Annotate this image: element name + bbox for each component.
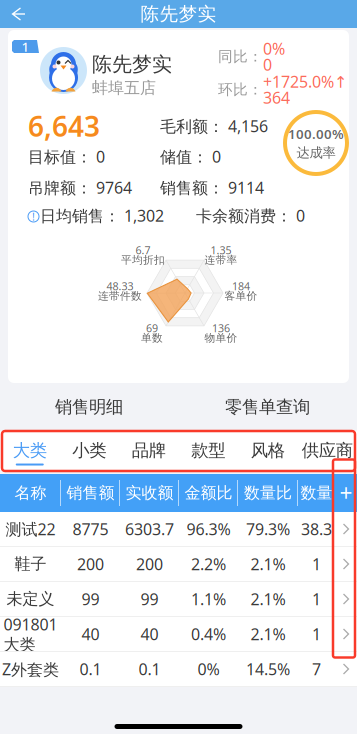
staticText: 连带件数 <box>98 289 142 302</box>
staticText: 1.1% <box>191 588 226 610</box>
staticText: 销售额： 9114 <box>160 177 264 198</box>
staticText: 卡余额消费： 0 <box>196 205 305 226</box>
staticText: 1.35 <box>210 243 231 257</box>
button[interactable]: Z外套类 <box>0 652 357 687</box>
button[interactable]: 小类 <box>59 431 119 470</box>
staticText: 吊牌额： 9764 <box>28 177 132 198</box>
staticText: 陈先梦实 <box>92 52 172 77</box>
staticText: 风格 <box>251 440 285 461</box>
staticText: 1 <box>312 553 321 575</box>
staticText: 品牌 <box>132 440 166 461</box>
button[interactable]: 供应商 <box>297 431 357 470</box>
button[interactable]: Add column <box>335 474 357 512</box>
staticText: 日均销售： 1,302 <box>40 205 164 226</box>
staticText: +1725.0%↑ <box>263 71 347 92</box>
button[interactable]: 零售单查询 <box>178 383 357 431</box>
staticText: 陈先梦实 <box>140 2 216 25</box>
staticText: 99 <box>81 588 99 610</box>
staticText: 0.4% <box>191 623 226 645</box>
staticText: 同比： <box>218 47 263 65</box>
staticText: 销售明细 <box>55 396 123 418</box>
staticText: 数量比 <box>244 483 292 503</box>
staticText: 物单价 <box>204 331 237 344</box>
staticText: 14.5% <box>246 658 290 680</box>
staticText: 184 <box>232 279 250 293</box>
staticText: Z外套类 <box>2 658 59 680</box>
staticText: 2.1% <box>250 623 285 645</box>
staticText: 零售单查询 <box>225 396 310 418</box>
staticText: 1 <box>312 588 321 610</box>
staticText: 实收额 <box>125 483 173 503</box>
staticText: 79.3% <box>246 518 290 540</box>
button[interactable]: 销售明细 <box>0 383 178 431</box>
staticText: 销售额 <box>66 483 114 503</box>
staticText: 40 <box>81 623 99 645</box>
button[interactable]: 风格 <box>238 431 297 470</box>
staticText: 0 <box>263 54 272 75</box>
staticText: 96.3% <box>186 518 230 540</box>
staticText: 大类 <box>13 440 47 461</box>
staticText: ! <box>32 209 35 224</box>
staticText: 0.1 <box>79 658 101 680</box>
staticText: 7 <box>312 658 321 680</box>
staticText: 储值： 0 <box>160 146 221 167</box>
staticText: 48.33 <box>106 279 133 293</box>
button[interactable]: 091801大类 <box>0 617 357 652</box>
staticText: 200 <box>77 553 104 575</box>
staticText: 2.1% <box>250 553 285 575</box>
button[interactable]: 未定义 <box>0 582 357 617</box>
button[interactable]: 款型 <box>178 431 238 470</box>
staticText: 1 <box>21 38 29 55</box>
staticText: 2.2% <box>191 553 226 575</box>
staticText: 连带率 <box>204 253 237 266</box>
staticText: 名称 <box>14 483 46 503</box>
staticText: 平均折扣 <box>121 253 165 266</box>
staticText: 38.3 <box>301 518 332 540</box>
staticText: 目标值： 0 <box>28 146 105 167</box>
staticText: + <box>339 478 352 508</box>
staticText: 6303.7 <box>125 518 174 540</box>
staticText: 未定义 <box>6 589 54 609</box>
staticText: 单数 <box>141 331 163 344</box>
staticText: 136 <box>212 321 230 335</box>
staticText: 1 <box>312 623 321 645</box>
button[interactable]: 鞋子 <box>0 547 357 582</box>
staticText: 毛利额： 4,156 <box>160 115 268 137</box>
staticText: 数量 <box>300 483 332 503</box>
button[interactable]: 品牌 <box>119 431 178 470</box>
staticText: 小类 <box>72 440 106 461</box>
staticText: 200 <box>136 553 163 575</box>
staticText: 测试22 <box>5 518 55 540</box>
staticText: 6.7 <box>135 243 150 257</box>
staticText: 款型 <box>191 440 225 461</box>
staticText: 金额比 <box>184 483 232 503</box>
staticText: 环比： <box>218 80 263 98</box>
staticText: 8775 <box>72 518 108 540</box>
staticText: 0% <box>263 38 285 59</box>
staticText: 供应商 <box>302 440 353 461</box>
button[interactable]: Back <box>0 0 36 28</box>
staticText: 达成率 <box>296 145 335 161</box>
staticText: 091801大类 <box>3 613 57 654</box>
staticText: 0.1 <box>138 658 160 680</box>
staticText: 100.00% <box>288 125 344 143</box>
staticText: 6,643 <box>28 107 100 145</box>
staticText: 2.1% <box>250 588 285 610</box>
staticText: 364 <box>263 87 290 108</box>
staticText: 69 <box>146 321 158 335</box>
button[interactable]: 大类 <box>0 431 59 470</box>
staticText: 99 <box>140 588 158 610</box>
staticText: 鞋子 <box>14 554 46 574</box>
staticText: 0% <box>197 658 219 680</box>
staticText: 蚌埠五店 <box>92 78 156 98</box>
staticText: 40 <box>140 623 158 645</box>
button[interactable]: 测试22 <box>0 512 357 547</box>
staticText: 客单价 <box>224 289 257 302</box>
